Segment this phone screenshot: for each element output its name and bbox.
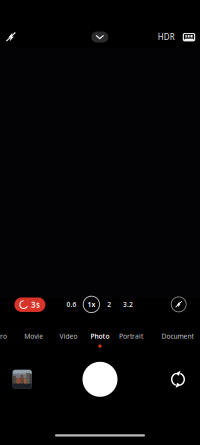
button[interactable]: 0.6 (64, 298, 78, 310)
staticText: Pro (0, 332, 7, 341)
staticText: Movie (24, 332, 43, 341)
button[interactable]: HDR (154, 30, 178, 44)
button[interactable]: 2 (104, 298, 115, 310)
button[interactable]: 1x (83, 296, 100, 313)
button[interactable]: Flash off (0, 25, 23, 49)
button[interactable]: Movie (24, 332, 43, 341)
button[interactable]: Flash settings (171, 297, 186, 312)
button[interactable]: Switch camera (166, 367, 190, 391)
button[interactable]: Photo library (13, 370, 32, 389)
staticText: 1x (87, 300, 95, 309)
staticText: Document (161, 332, 193, 341)
button[interactable]: Document (161, 332, 193, 341)
staticText: HDR (158, 32, 175, 42)
button[interactable]: RAW capture (181, 30, 197, 44)
button[interactable]: Portrait (119, 332, 143, 341)
button[interactable]: 3.2 (121, 298, 135, 310)
staticText: Video (59, 332, 77, 341)
staticText: 3.2 (123, 300, 133, 309)
staticText: 0.6 (66, 300, 76, 309)
button[interactable]: 3s (14, 297, 45, 312)
button[interactable]: Video (59, 332, 77, 341)
staticText: Portrait (119, 332, 143, 341)
button[interactable]: More camera controls (91, 31, 108, 42)
button[interactable]: Pro (0, 332, 7, 341)
button[interactable]: Photo (90, 332, 109, 341)
staticText: 3s (31, 299, 40, 310)
staticText: 2 (107, 300, 111, 309)
button[interactable]: Take photo (82, 362, 117, 397)
staticText: Photo (90, 332, 109, 341)
